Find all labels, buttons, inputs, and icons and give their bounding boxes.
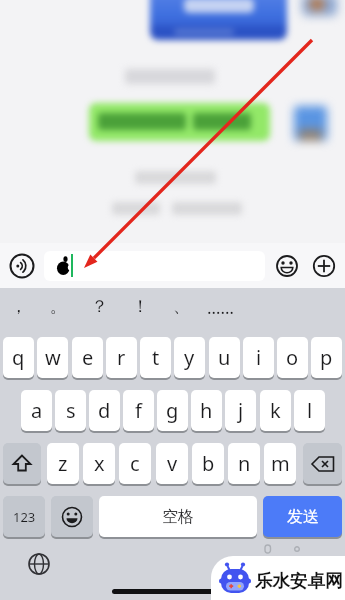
staticText: w bbox=[45, 344, 61, 371]
button[interactable]: a bbox=[21, 390, 52, 431]
button[interactable]: g bbox=[157, 390, 188, 431]
button[interactable]: b bbox=[192, 443, 224, 484]
staticText: ？ bbox=[91, 296, 108, 317]
button[interactable] bbox=[276, 255, 298, 277]
staticText: m bbox=[271, 450, 290, 477]
button[interactable] bbox=[44, 251, 265, 281]
staticText: x bbox=[94, 450, 105, 477]
staticText: e bbox=[82, 344, 94, 371]
button[interactable]: 123 bbox=[3, 496, 45, 537]
button[interactable] bbox=[9, 253, 35, 279]
button[interactable]: m bbox=[264, 443, 296, 484]
button[interactable]: v bbox=[156, 443, 188, 484]
staticText: v bbox=[167, 450, 178, 477]
button[interactable] bbox=[28, 553, 50, 575]
button[interactable]: y bbox=[174, 337, 205, 378]
staticText: ， bbox=[10, 296, 27, 317]
staticText: p bbox=[320, 344, 333, 371]
button[interactable]: s bbox=[55, 390, 86, 431]
button[interactable]: 乐水安卓网 bbox=[211, 556, 345, 600]
staticText: o bbox=[286, 344, 299, 371]
staticText: j bbox=[238, 397, 244, 424]
button[interactable]: h bbox=[191, 390, 222, 431]
staticText: 发送 bbox=[287, 507, 319, 527]
button[interactable]: z bbox=[47, 443, 79, 484]
button[interactable]: x bbox=[83, 443, 115, 484]
staticText: d bbox=[98, 397, 111, 424]
button[interactable]: p bbox=[311, 337, 342, 378]
staticText: u bbox=[218, 344, 231, 371]
button[interactable]: r bbox=[106, 337, 137, 378]
button[interactable] bbox=[51, 496, 93, 537]
button[interactable] bbox=[313, 255, 335, 277]
button[interactable]: l bbox=[294, 390, 325, 431]
staticText: 。 bbox=[50, 296, 67, 317]
staticText: y bbox=[184, 344, 195, 371]
button[interactable]: d bbox=[89, 390, 120, 431]
staticText: n bbox=[238, 450, 251, 477]
button[interactable]: n bbox=[228, 443, 260, 484]
button[interactable]: t bbox=[140, 337, 171, 378]
button[interactable]: o bbox=[277, 337, 308, 378]
button[interactable]: e bbox=[72, 337, 103, 378]
staticText: f bbox=[135, 397, 142, 424]
staticText: c bbox=[130, 450, 140, 477]
button[interactable]: u bbox=[209, 337, 240, 378]
staticText: t bbox=[152, 344, 160, 371]
staticText: a bbox=[31, 397, 43, 424]
staticText: i bbox=[256, 344, 262, 371]
staticText: z bbox=[58, 450, 68, 477]
staticText: q bbox=[12, 344, 25, 371]
button[interactable]: k bbox=[260, 390, 291, 431]
staticText: g bbox=[166, 397, 179, 424]
staticText: b bbox=[202, 450, 215, 477]
button[interactable]: 发送 bbox=[263, 496, 342, 537]
button[interactable]: w bbox=[37, 337, 68, 378]
button[interactable]: i bbox=[243, 337, 274, 378]
staticText: 、 bbox=[173, 296, 190, 317]
button[interactable]: f bbox=[123, 390, 154, 431]
staticText: …… bbox=[207, 296, 234, 319]
button[interactable]: 空格 bbox=[99, 496, 257, 537]
button[interactable]: q bbox=[3, 337, 34, 378]
staticText: r bbox=[117, 344, 126, 371]
button[interactable]: j bbox=[225, 390, 256, 431]
button[interactable] bbox=[3, 443, 41, 484]
staticText: 123 bbox=[13, 508, 36, 526]
staticText: l bbox=[307, 397, 313, 424]
staticText: k bbox=[270, 397, 281, 424]
staticText: h bbox=[200, 397, 213, 424]
staticText: 空格 bbox=[162, 507, 194, 527]
button[interactable]: c bbox=[119, 443, 151, 484]
staticText: 乐水安卓网 bbox=[255, 570, 343, 592]
staticText: s bbox=[66, 397, 76, 424]
staticText: ！ bbox=[132, 296, 149, 317]
button[interactable] bbox=[303, 443, 342, 484]
